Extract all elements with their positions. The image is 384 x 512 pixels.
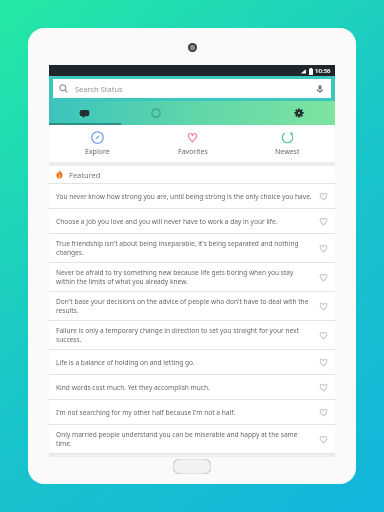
other: Favorite <box>318 407 329 418</box>
button[interactable]: Featured <box>49 166 335 183</box>
other: Favorite <box>318 330 329 341</box>
button[interactable]: Only married people understand you can b… <box>49 425 335 453</box>
staticText: 10:56 <box>315 67 331 75</box>
staticText: Explore <box>85 147 110 157</box>
staticText: Never be afraid to try something new bec… <box>56 268 312 286</box>
button[interactable]: I'm not searching for my other half beca… <box>49 400 335 424</box>
other: Favorite <box>318 243 329 254</box>
staticText: Favorites <box>178 147 208 157</box>
button[interactable]: Failure is only a temporary change in di… <box>49 321 335 349</box>
button[interactable]: Choose a job you love and you will never… <box>49 209 335 233</box>
button[interactable]: Never be afraid to try something new bec… <box>49 263 335 291</box>
button[interactable]: Home <box>173 459 211 474</box>
other: Favorite <box>318 191 329 202</box>
button[interactable]: Search <box>53 79 331 98</box>
staticText: Choose a job you love and you will never… <box>56 217 312 226</box>
other: Favorite <box>318 272 329 283</box>
staticText: Life is a balance of holding on and lett… <box>56 358 312 367</box>
button[interactable]: True friendship isn't about being insepa… <box>49 234 335 262</box>
button[interactable]: Favorites <box>145 125 240 162</box>
other: Search <box>59 84 68 93</box>
staticText: Kind words cost much. Yet they accomplis… <box>56 383 312 392</box>
other: Favorite <box>318 216 329 227</box>
staticText: Featured <box>69 170 101 180</box>
other: Favorite <box>318 301 329 312</box>
staticText: Newest <box>275 147 300 157</box>
other: Favorite <box>318 382 329 393</box>
button[interactable]: Life is a balance of holding on and lett… <box>49 350 335 374</box>
staticText: You never know how strong you are, until… <box>56 192 312 201</box>
button[interactable]: Explore <box>49 125 145 162</box>
button[interactable]: You never know how strong you are, until… <box>49 184 335 208</box>
other: Favorite <box>318 357 329 368</box>
button[interactable]: Kind words cost much. Yet they accomplis… <box>49 375 335 399</box>
other: Favorite <box>318 434 329 445</box>
staticText: I'm not searching for my other half beca… <box>56 408 312 417</box>
button[interactable]: Status <box>120 101 191 125</box>
staticText: Search Status <box>75 84 123 94</box>
staticText: Don't base your decisions on the advice … <box>56 297 312 315</box>
button[interactable]: Newest <box>240 125 335 162</box>
other: Voice search <box>315 84 325 94</box>
button[interactable]: Quotes <box>49 101 120 125</box>
staticText: Failure is only a temporary change in di… <box>56 326 312 344</box>
staticText: Only married people understand you can b… <box>56 430 312 448</box>
button[interactable]: Don't base your decisions on the advice … <box>49 292 335 320</box>
staticText: True friendship isn't about being insepa… <box>56 239 312 257</box>
button[interactable]: Settings <box>263 101 335 125</box>
